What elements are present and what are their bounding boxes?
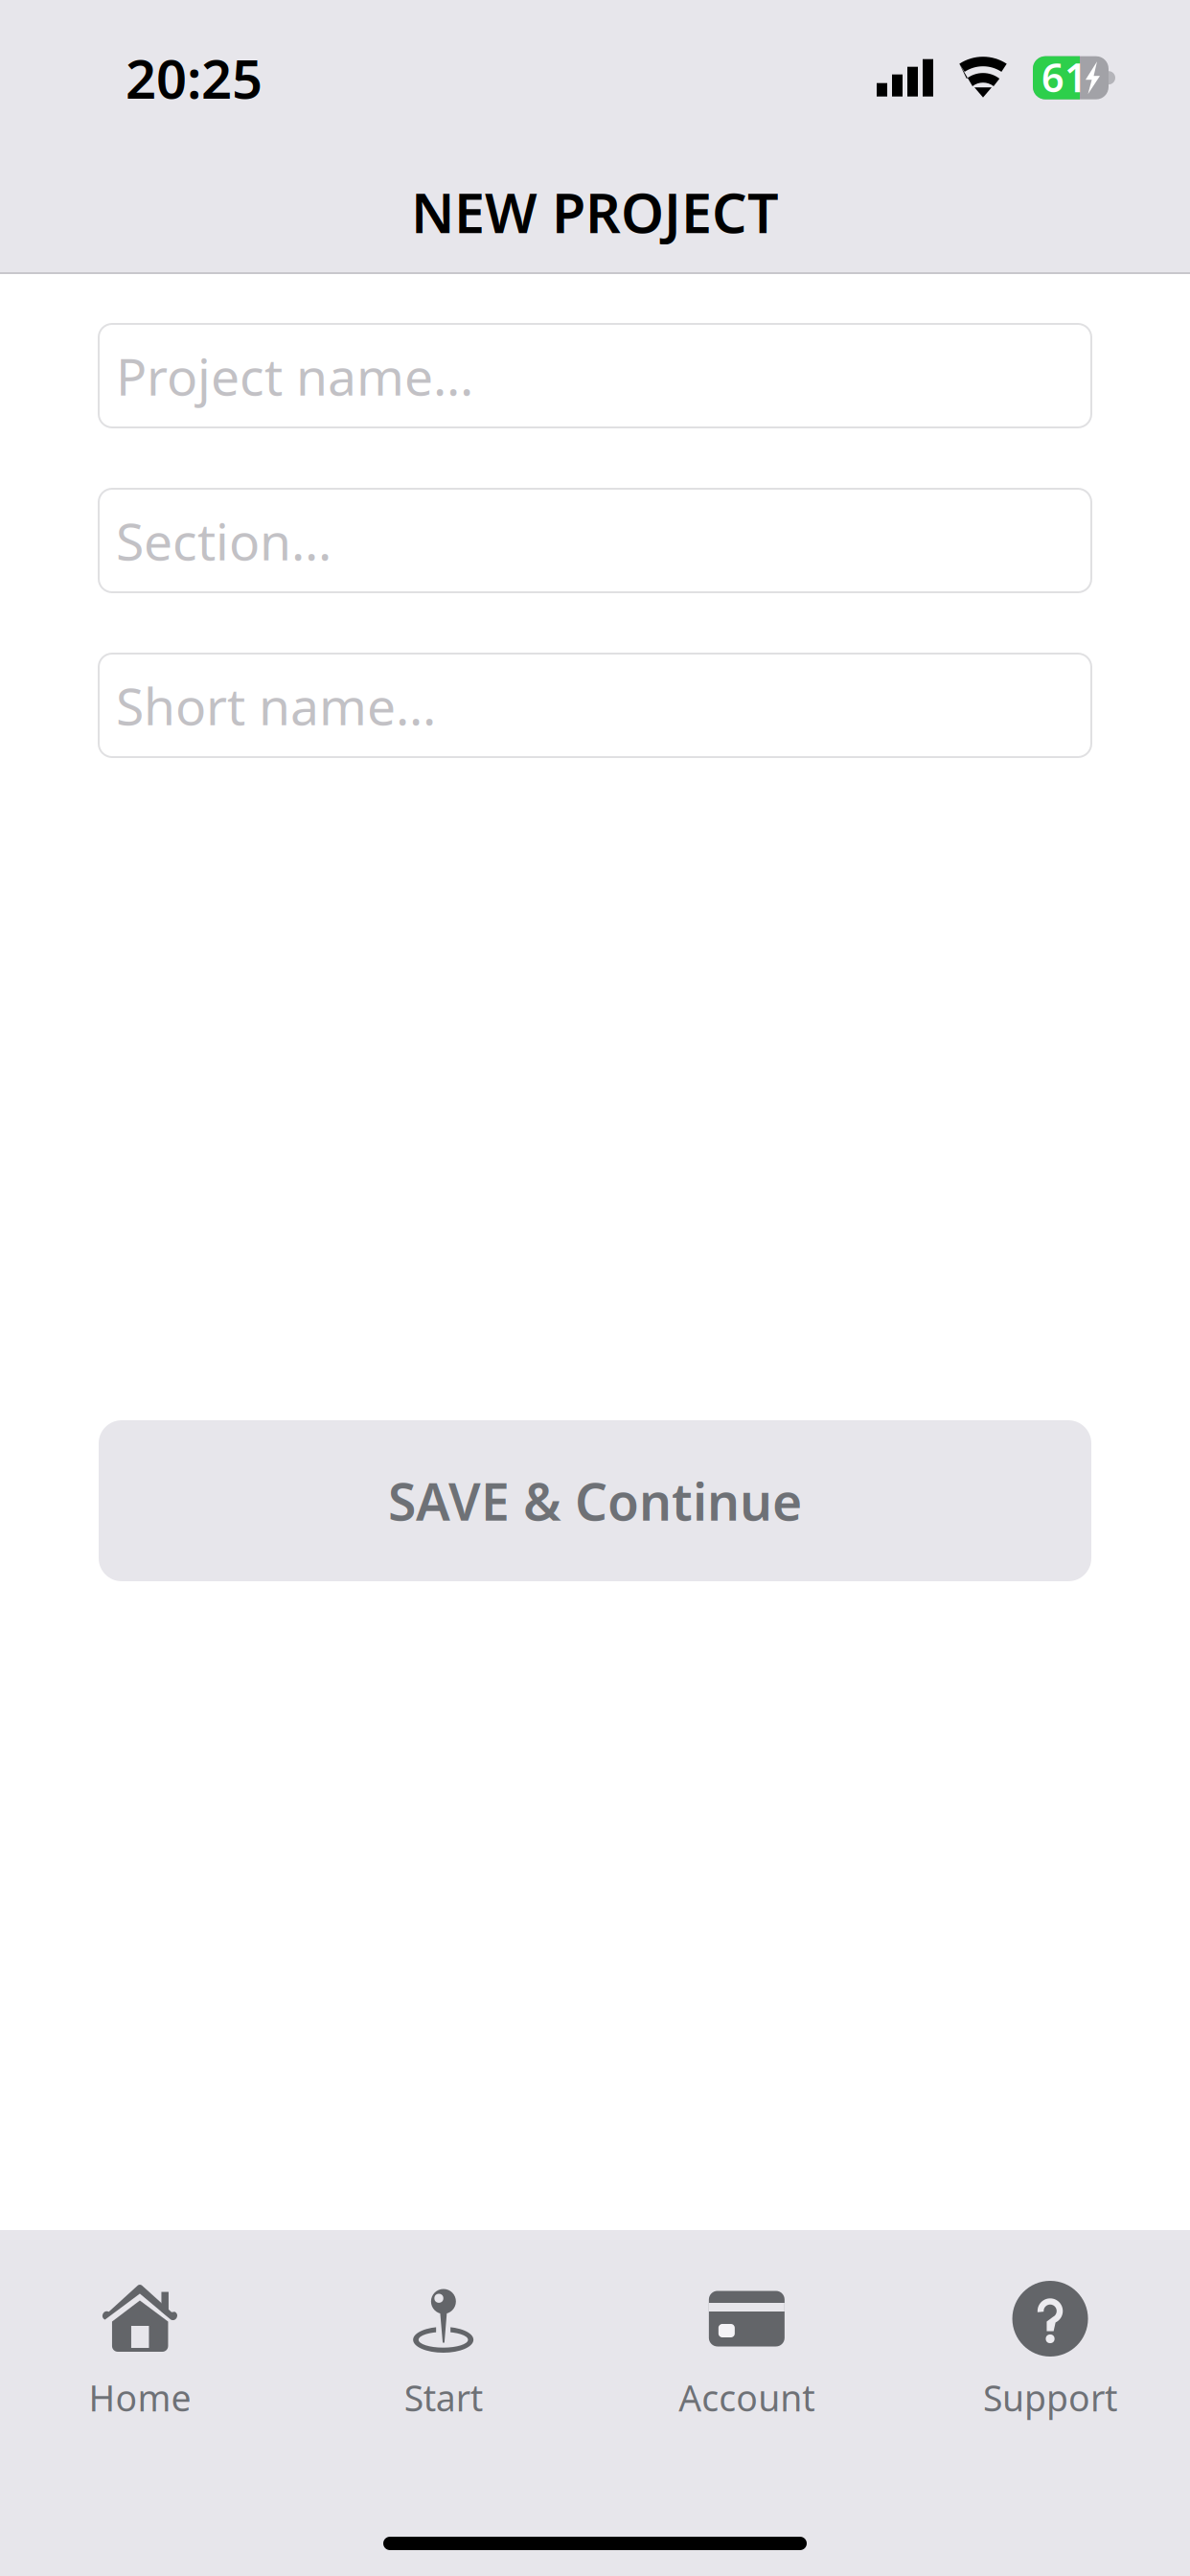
button[interactable]: Section... <box>99 489 1091 592</box>
staticText: Section... <box>116 507 332 574</box>
button[interactable]: Project name... <box>99 324 1091 427</box>
staticText: Start <box>404 2374 483 2421</box>
staticText: SAVE & Continue <box>388 1467 802 1535</box>
staticText: NEW PROJECT <box>411 175 779 248</box>
staticText: Support <box>983 2374 1117 2421</box>
staticText: Home <box>89 2374 191 2421</box>
button[interactable]: Start <box>292 2230 595 2421</box>
staticText: 61 <box>1041 51 1087 103</box>
staticText: Account <box>679 2374 815 2421</box>
button[interactable]: SAVE & Continue <box>99 1420 1091 1581</box>
button[interactable]: Account <box>595 2230 898 2421</box>
button[interactable]: Home <box>0 2230 292 2421</box>
staticText: Project name... <box>116 342 473 410</box>
staticText: Short name... <box>116 671 436 739</box>
button[interactable]: Short name... <box>99 654 1091 757</box>
staticText: 20:25 <box>126 42 263 113</box>
button[interactable]: Support <box>898 2230 1190 2421</box>
